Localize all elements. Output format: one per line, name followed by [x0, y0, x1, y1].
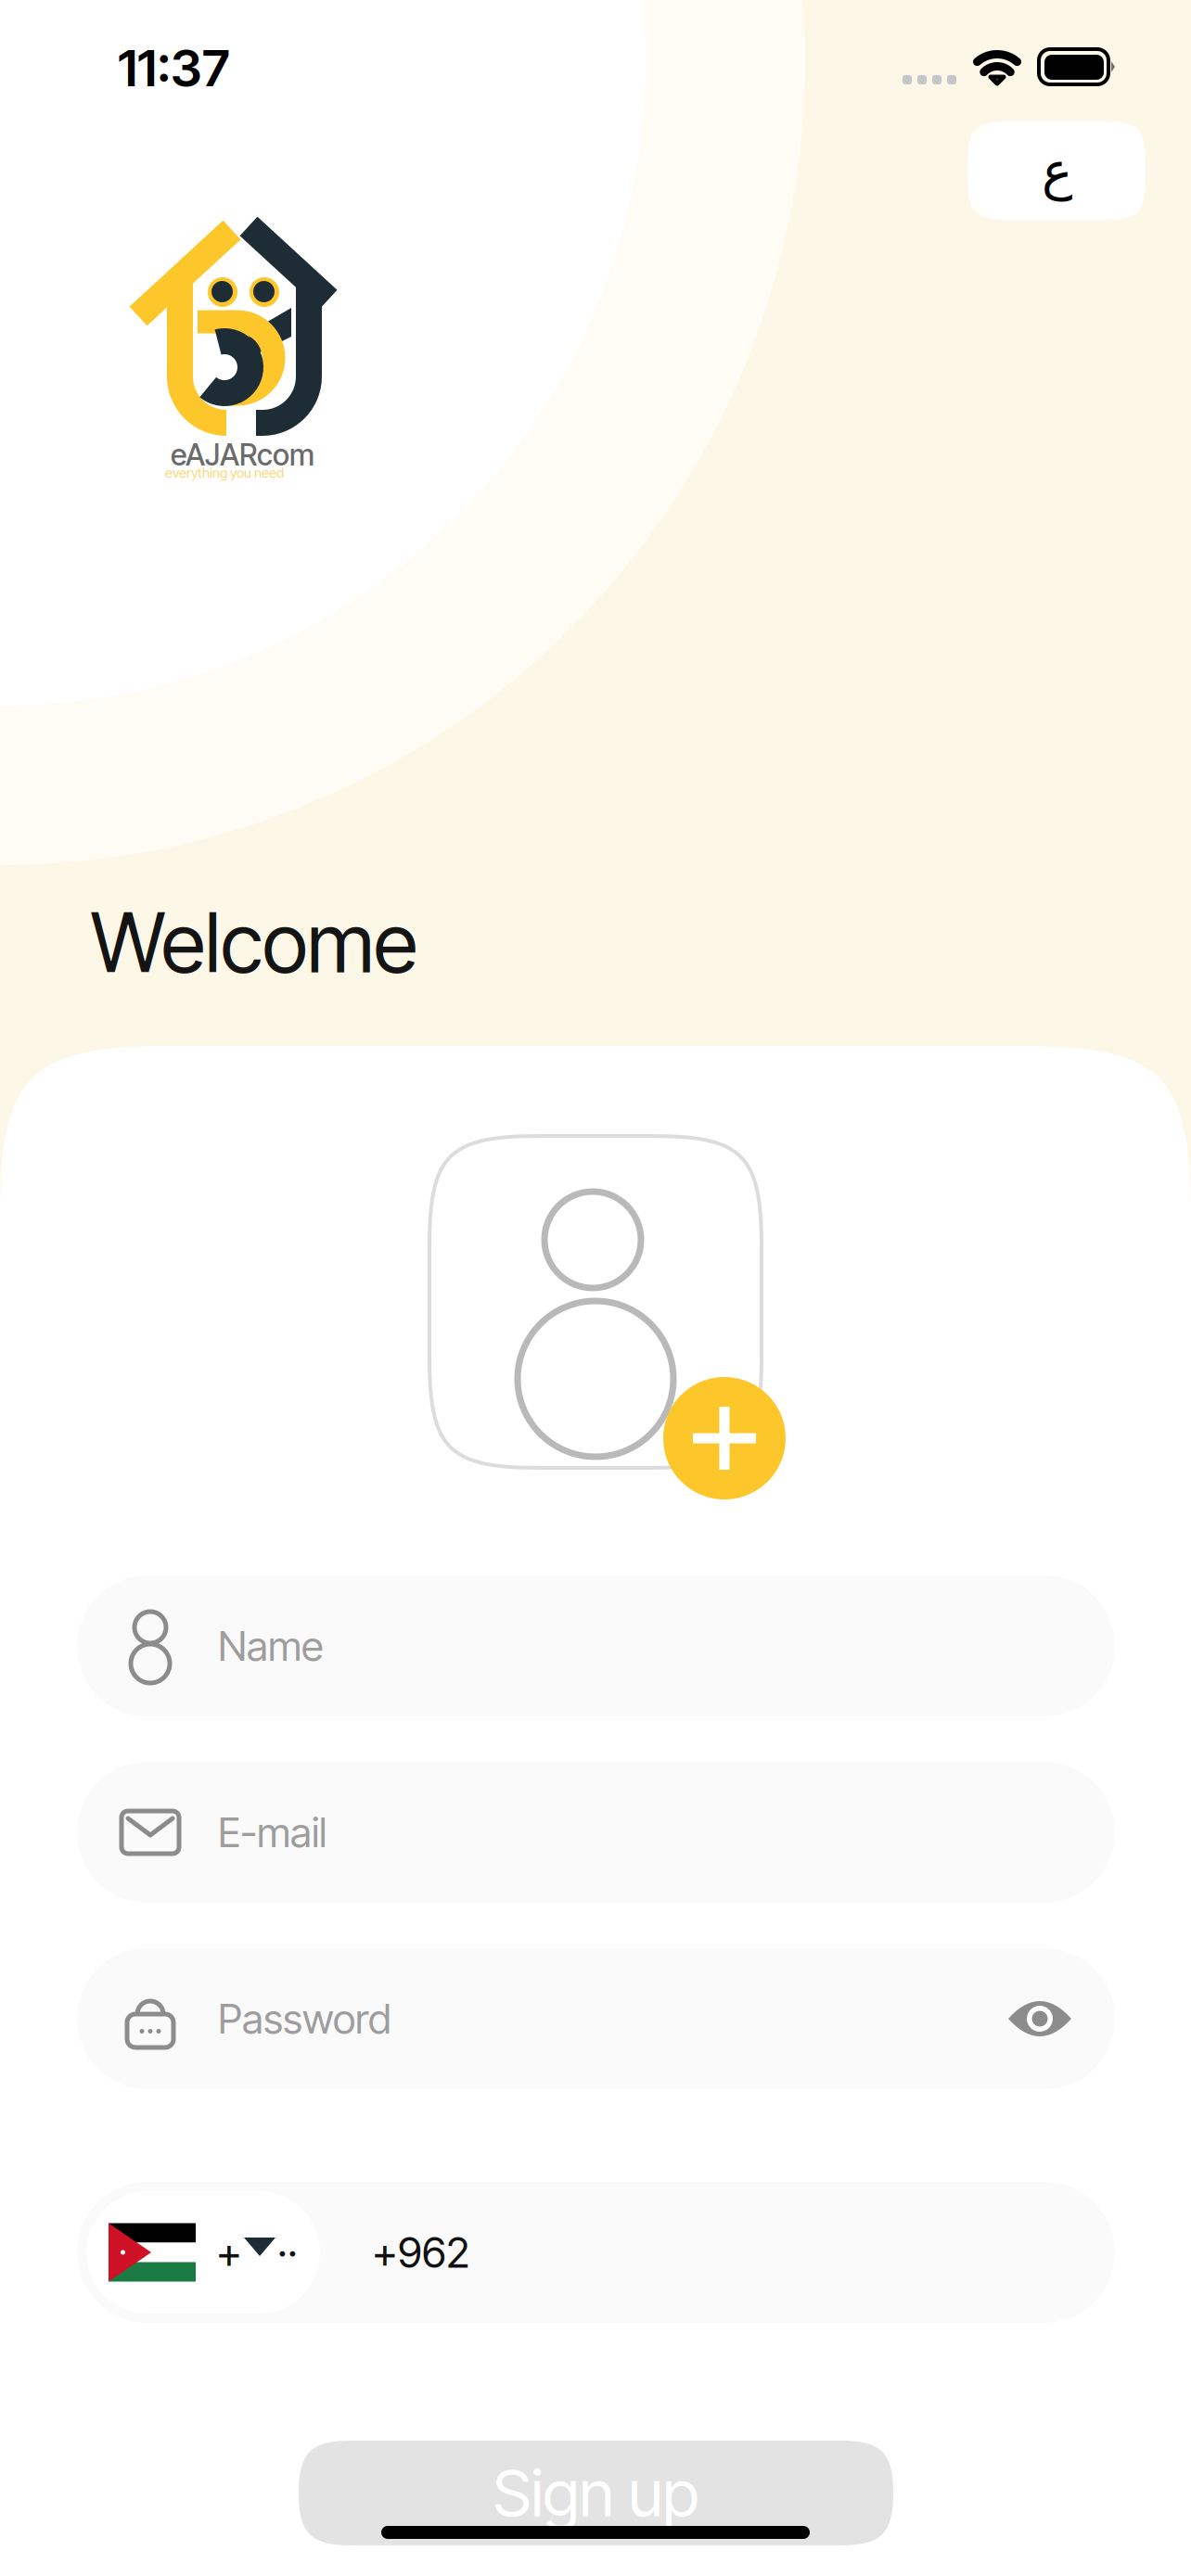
staticText: everything you need — [165, 465, 284, 481]
staticText: Password — [218, 1994, 391, 2043]
button[interactable]: Add profile photo — [663, 1377, 786, 1499]
staticText: ع — [1041, 140, 1072, 201]
button[interactable]: Show password — [1005, 1995, 1074, 2043]
button[interactable]: Sign up — [299, 2441, 893, 2545]
staticText: + — [216, 2227, 242, 2278]
staticText: .. — [277, 2216, 298, 2267]
staticText: Name — [218, 1621, 323, 1671]
button[interactable]: Switch language to Arabic — [967, 121, 1146, 220]
staticText: eAJARcom — [171, 437, 314, 473]
button[interactable]: Select country code — [86, 2191, 320, 2314]
staticText: E-mail — [218, 1808, 327, 1857]
staticText: +962 — [372, 2227, 469, 2278]
staticText: 11:37 — [118, 37, 229, 98]
staticText: Sign up — [493, 2454, 699, 2532]
staticText: Welcome — [91, 893, 417, 992]
